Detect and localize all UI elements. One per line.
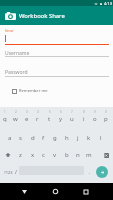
button[interactable]: Shift <box>0 148 16 162</box>
button[interactable]: 6 <box>55 108 66 125</box>
button[interactable]: 4 <box>32 108 43 125</box>
staticText: f <box>42 134 45 142</box>
button[interactable]: Back <box>14 183 35 200</box>
staticText: 8 <box>83 110 85 114</box>
button[interactable]: Recents <box>75 183 96 200</box>
staticText: 4:13 <box>104 1 112 6</box>
staticText: p <box>104 115 108 123</box>
staticText: o <box>93 115 97 123</box>
staticText: w <box>13 115 18 123</box>
staticText: r <box>36 115 39 123</box>
button[interactable]: / <box>12 165 20 179</box>
staticText: k <box>87 134 91 142</box>
button[interactable]: x <box>27 148 38 162</box>
staticText: a <box>8 134 12 142</box>
button[interactable]: s <box>15 131 26 145</box>
button[interactable]: d <box>27 131 38 145</box>
staticText: g <box>53 134 57 142</box>
button[interactable]: 8 <box>78 108 89 125</box>
button[interactable]: f <box>38 131 49 145</box>
staticText: 2 <box>15 110 17 114</box>
staticText: d <box>31 134 35 142</box>
button[interactable]: m <box>83 148 94 162</box>
staticText: u <box>70 115 74 123</box>
staticText: t <box>48 115 51 123</box>
button[interactable]: j <box>72 131 83 145</box>
staticText: 7 <box>71 110 73 114</box>
staticText: Workbook Share <box>19 12 65 20</box>
button[interactable]: c <box>38 148 49 162</box>
staticText: b <box>65 151 69 159</box>
button[interactable]: n <box>72 148 83 162</box>
staticText: c <box>42 151 45 159</box>
other: App icon <box>5 12 16 20</box>
button[interactable]: Remember me <box>12 88 48 94</box>
button[interactable]: 7 <box>66 108 77 125</box>
button[interactable]: ?123 <box>1 165 15 179</box>
button[interactable]: 9 <box>89 108 100 125</box>
staticText: 9 <box>94 110 96 114</box>
staticText: 0 <box>105 110 107 114</box>
staticText: . <box>89 169 91 176</box>
staticText: y <box>59 115 63 123</box>
staticText: m <box>86 151 92 159</box>
button[interactable]: 3 <box>21 108 32 125</box>
button[interactable]: Backspace <box>97 148 113 162</box>
staticText: Remember me <box>19 88 48 94</box>
staticText: j <box>77 134 79 142</box>
staticText: s <box>19 134 22 142</box>
staticText: i <box>83 115 85 123</box>
staticText: 1 <box>4 110 6 114</box>
button[interactable]: h <box>61 131 72 145</box>
staticText: 4 <box>37 110 39 114</box>
button[interactable]: a <box>4 131 15 145</box>
button[interactable]: Enter <box>96 166 108 178</box>
button[interactable]: . <box>85 165 94 179</box>
staticText: x <box>31 151 35 159</box>
button[interactable]: 0 <box>100 108 111 125</box>
staticText: l <box>100 134 102 142</box>
staticText: 5 <box>49 110 51 114</box>
button[interactable]: k <box>83 131 94 145</box>
staticText: h <box>65 134 69 142</box>
staticText: / <box>15 169 17 176</box>
staticText: q <box>3 115 7 123</box>
button[interactable]: z <box>15 148 26 162</box>
staticText: n <box>76 151 80 159</box>
staticText: Username <box>5 50 30 57</box>
button[interactable]: Home <box>45 183 66 200</box>
button[interactable]: g <box>49 131 60 145</box>
button[interactable]: 1 <box>0 108 10 125</box>
staticText: e <box>25 115 29 123</box>
button[interactable]: 2 <box>10 108 21 125</box>
staticText: 6 <box>60 110 62 114</box>
staticText: Password <box>5 69 28 76</box>
staticText: ?123 <box>4 170 13 175</box>
button[interactable]: 5 <box>44 108 55 125</box>
button[interactable]: b <box>61 148 72 162</box>
staticText: z <box>19 151 22 159</box>
button[interactable]: v <box>49 148 60 162</box>
staticText: 3 <box>26 110 28 114</box>
staticText: Server <box>5 29 14 33</box>
staticText: v <box>53 151 57 159</box>
button[interactable]: l <box>95 131 106 145</box>
